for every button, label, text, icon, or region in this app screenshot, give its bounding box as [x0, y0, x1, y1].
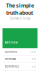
staticText: Item two [4, 57, 16, 61]
staticText: 8% [31, 57, 35, 61]
staticText: 4% [31, 65, 35, 68]
staticText: The simple truth about [6, 2, 34, 16]
staticText: Start now [4, 41, 17, 44]
staticText: Updated today [10, 17, 30, 20]
staticText: Item one [4, 50, 17, 53]
staticText: money [11, 16, 28, 23]
staticText: 12% [29, 50, 35, 53]
staticText: Item three [4, 65, 19, 68]
